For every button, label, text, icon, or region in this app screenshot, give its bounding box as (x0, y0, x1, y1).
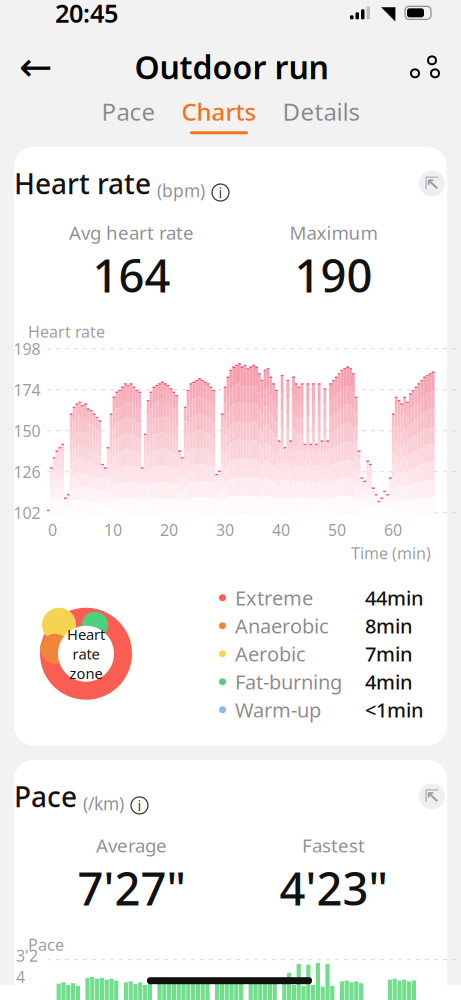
staticText: 4'23" (279, 858, 387, 918)
staticText: 20:45 (55, 0, 118, 30)
staticText: 150 (13, 420, 40, 441)
button[interactable]: Details (280, 95, 361, 134)
staticText: ← (19, 44, 53, 89)
button[interactable]: Back (12, 45, 60, 89)
staticText: 164 (92, 245, 170, 305)
staticText: Pace (101, 95, 155, 127)
staticText: (/km) (83, 792, 124, 815)
staticText: i (218, 183, 222, 202)
staticText: Aerobic (235, 640, 306, 667)
staticText: Heart (67, 624, 105, 644)
staticText: 7min (365, 640, 413, 667)
staticText: <1min (365, 696, 424, 723)
button[interactable]: About Heart rate (211, 183, 230, 202)
staticText: 102 (13, 502, 40, 523)
staticText: 20 (160, 519, 178, 540)
staticText: (bpm) (157, 179, 205, 202)
staticText: 8min (365, 612, 413, 639)
staticText: 198 (13, 338, 40, 359)
staticText: 190 (294, 245, 372, 305)
staticText: Heart rate (28, 321, 105, 342)
staticText: 174 (13, 379, 40, 400)
staticText: Outdoor run (134, 46, 328, 88)
staticText: Avg heart rate (69, 220, 194, 245)
button[interactable]: Expand chart (417, 781, 447, 811)
staticText: 10 (104, 519, 122, 540)
button[interactable]: Expand chart (417, 168, 447, 198)
staticText: 40 (272, 519, 290, 540)
button[interactable]: About Pace (130, 796, 149, 815)
staticText: i (137, 796, 141, 815)
staticText: rate (72, 644, 99, 663)
staticText: Warm-up (235, 696, 321, 723)
staticText: ⇱ (424, 174, 439, 193)
staticText: Pace (28, 934, 64, 955)
staticText: 3'24 (16, 945, 38, 987)
staticText: Time (min) (351, 542, 431, 564)
button[interactable]: Share (403, 45, 447, 89)
staticText: 0 (48, 519, 57, 540)
staticText: Charts (181, 95, 256, 127)
staticText: 60 (384, 519, 402, 540)
staticText: Anaerobic (235, 612, 329, 639)
staticText: zone (69, 663, 102, 683)
staticText: Extreme (235, 584, 313, 611)
staticText: Fastest (302, 833, 365, 858)
staticText: 30 (216, 519, 234, 540)
staticText: Heart rate (14, 165, 151, 202)
staticText: Maximum (289, 220, 377, 245)
staticText: ◥ (381, 2, 395, 23)
staticText: 50 (328, 519, 346, 540)
staticText: Fat-burning (235, 668, 342, 695)
button[interactable]: Pace (99, 95, 157, 134)
staticText: 7'27" (77, 858, 185, 918)
staticText: Pace (14, 778, 77, 815)
staticText: Average (96, 833, 167, 858)
staticText: 4min (365, 668, 413, 695)
staticText: 126 (13, 461, 40, 482)
staticText: Details (282, 95, 359, 127)
staticText: ⇱ (424, 786, 439, 806)
staticText: 44min (365, 584, 424, 611)
button[interactable]: Charts (179, 95, 258, 134)
